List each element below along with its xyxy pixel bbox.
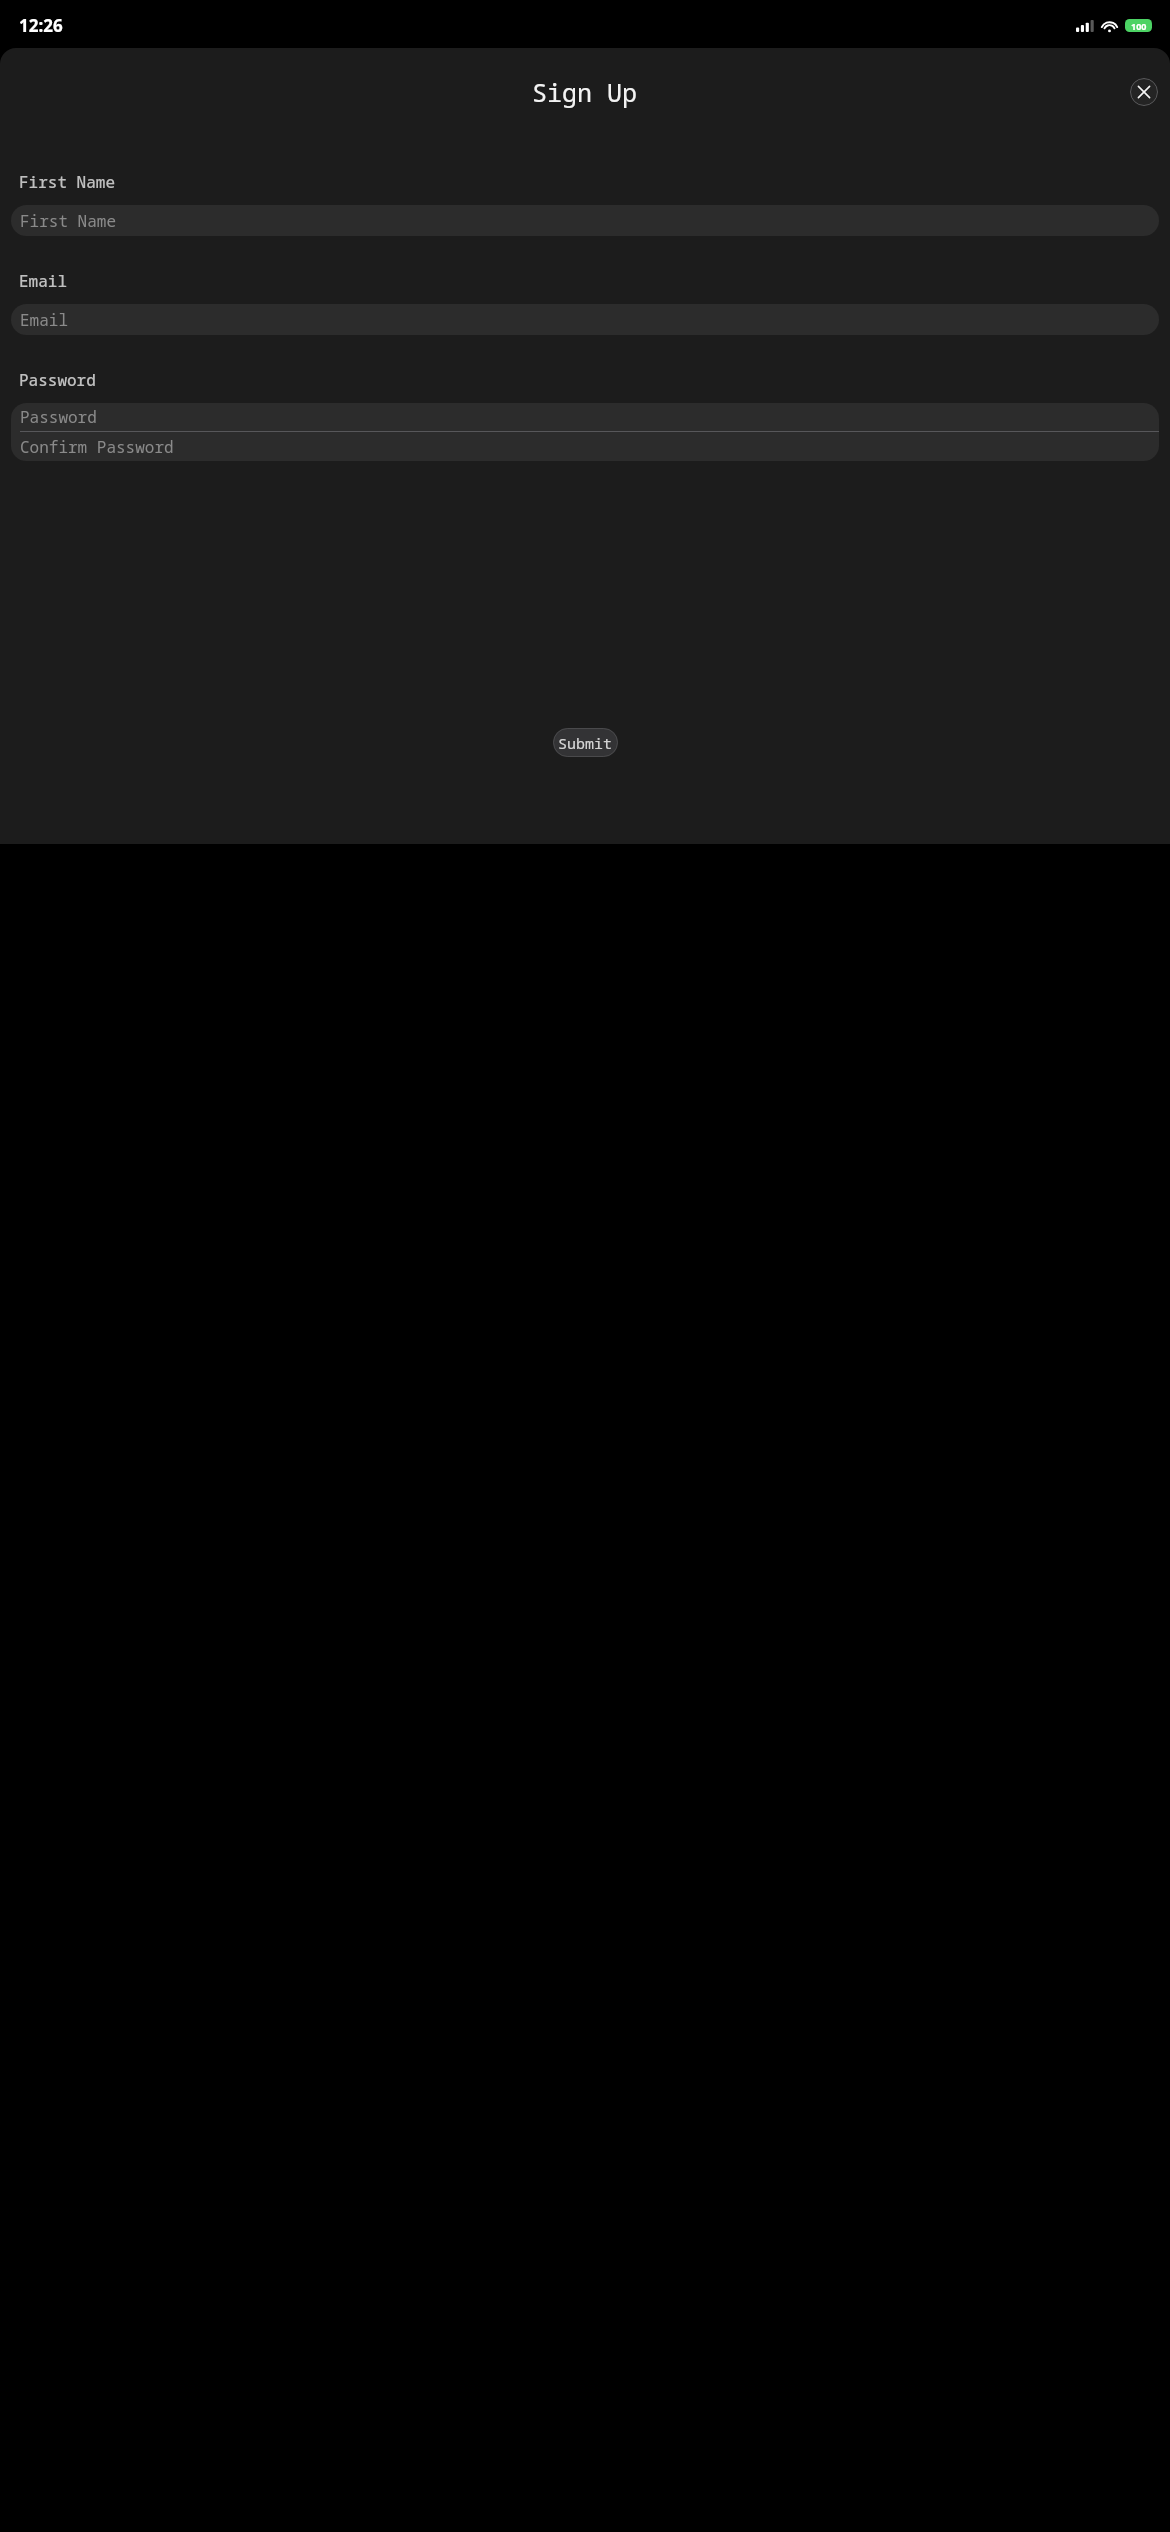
button[interactable]: Submit	[553, 728, 618, 757]
staticText: Confirm Password	[20, 436, 174, 458]
staticText: First Name	[20, 210, 117, 232]
staticText: Password	[20, 406, 97, 428]
staticText: Submit	[558, 733, 613, 753]
staticText: 12:26	[19, 14, 63, 37]
staticText: First Name	[19, 171, 116, 193]
staticText: Password	[19, 369, 96, 391]
button[interactable]: Password	[11, 403, 1159, 431]
button[interactable]: Close	[1130, 78, 1158, 106]
staticText: 100	[1131, 20, 1147, 32]
staticText: Email	[19, 270, 68, 292]
button[interactable]: Email	[11, 304, 1159, 335]
button[interactable]: Confirm Password	[11, 432, 1159, 461]
staticText: Sign Up	[532, 75, 638, 109]
staticText: Email	[20, 309, 69, 331]
button[interactable]: First Name	[11, 205, 1159, 236]
